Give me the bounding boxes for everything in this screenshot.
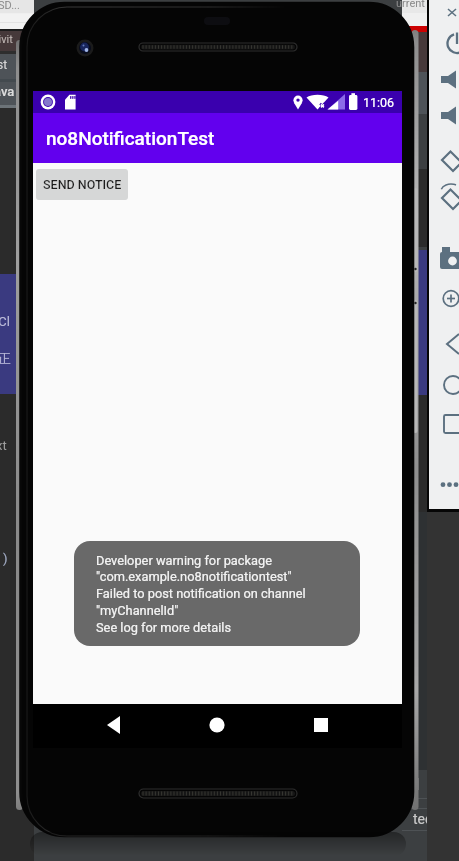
- staticText: nCl: [0, 314, 10, 329]
- staticText: ): [3, 551, 8, 566]
- staticText: Developer warning for package "com.examp…: [96, 553, 306, 636]
- button[interactable]: Home: [197, 705, 237, 745]
- button[interactable]: SEND NOTICE: [36, 169, 128, 200]
- staticText: ted app: [413, 811, 459, 827]
- staticText: tivit: [0, 33, 13, 46]
- staticText: xt: [0, 438, 7, 453]
- staticText: no8NotificationTest: [46, 127, 215, 149]
- staticText: ava: [0, 84, 15, 99]
- button[interactable]: Recent apps: [301, 705, 341, 745]
- staticText: urrent: [396, 0, 425, 10]
- staticText: SD...: [0, 0, 20, 12]
- staticText: SEND NOTICE: [43, 177, 122, 192]
- staticText: 11:06: [363, 95, 395, 110]
- staticText: st: [0, 58, 8, 72]
- staticText: 正: [0, 350, 11, 366]
- button[interactable]: Back: [92, 705, 132, 745]
